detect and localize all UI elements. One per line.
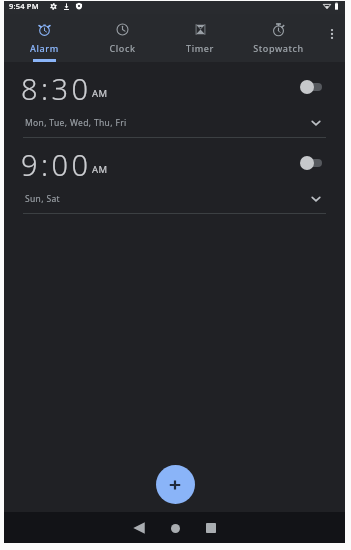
staticText: Stopwatch [253,42,304,54]
button[interactable]: Add alarm [156,465,195,504]
button[interactable]: Recent apps [198,515,224,541]
button[interactable]: Toggle alarm [300,79,322,95]
button[interactable]: More options [319,14,345,62]
staticText: Clock [109,42,136,54]
button[interactable]: Back [126,515,152,541]
staticText: Timer [186,42,214,54]
button[interactable]: Alarm [5,14,83,62]
button[interactable]: Toggle alarm [300,155,322,171]
button[interactable]: 8:30 [4,62,345,138]
staticText: 9:00 [21,145,92,184]
staticText: Mon, Tue, Wed, Thu, Fri [25,117,127,129]
staticText: Sun, Sat [25,193,60,205]
button[interactable]: Clock [83,14,161,62]
staticText: AM [92,87,108,100]
button[interactable]: Timer [161,14,239,62]
button[interactable]: 9:00 [4,138,345,214]
button[interactable]: Stopwatch [239,14,318,62]
button[interactable]: Home [162,515,188,541]
staticText: 8:30 [21,69,92,108]
staticText: 9:54 PM [9,1,39,11]
staticText: Alarm [30,42,59,54]
staticText: AM [92,163,108,176]
